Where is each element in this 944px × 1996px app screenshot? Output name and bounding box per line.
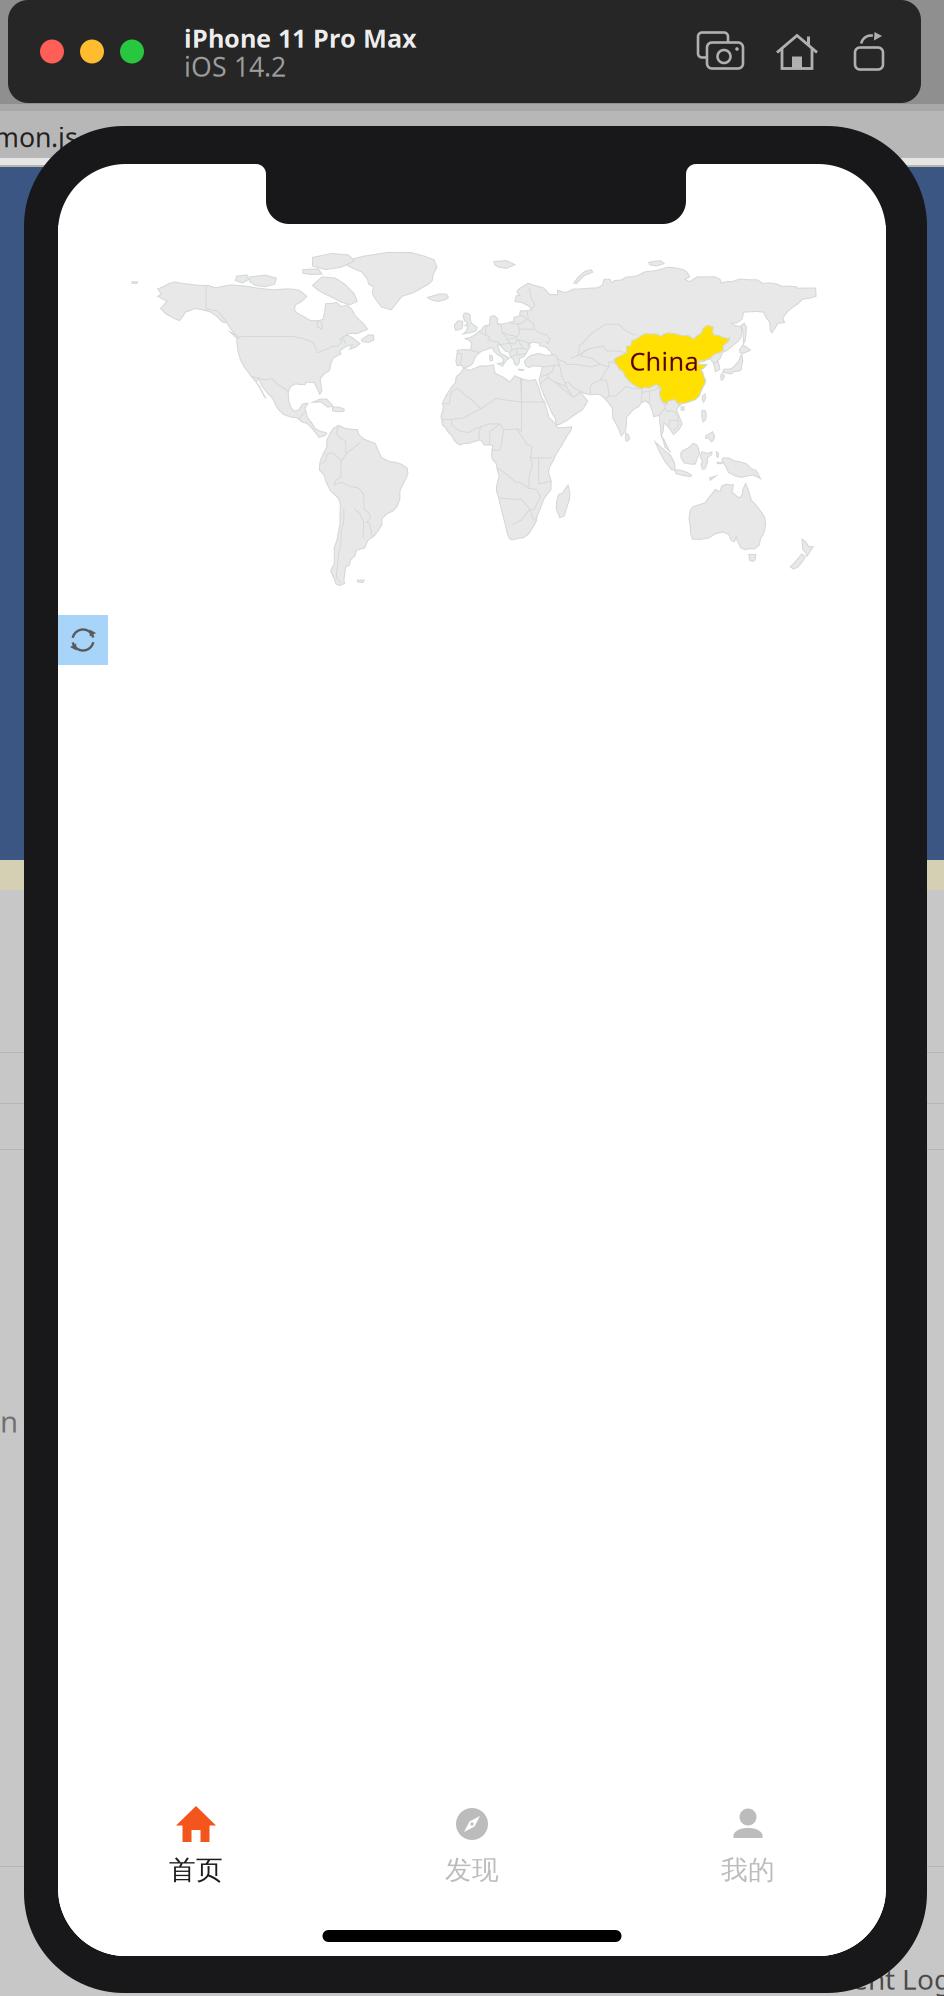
button[interactable]: Refresh [58, 615, 108, 665]
button[interactable]: 发现 [334, 1804, 610, 1883]
staticText: iOS 14.2 [184, 49, 286, 84]
staticText: 我的 [721, 1854, 775, 1886]
button[interactable]: Home [776, 31, 818, 71]
button[interactable]: 我的 [610, 1804, 886, 1883]
button[interactable]: Screenshot [698, 31, 746, 71]
staticText: Event Log [822, 1960, 944, 1996]
staticText: 首页 [169, 1854, 223, 1886]
button[interactable]: 首页 [58, 1804, 334, 1883]
staticText: 发现 [445, 1854, 499, 1886]
button[interactable]: Rotate [852, 31, 892, 71]
staticText: iPhone 11 Pro Max [184, 21, 417, 55]
staticText: mon.js [0, 119, 78, 155]
staticText: China [629, 344, 698, 378]
staticText: n [0, 1401, 18, 1440]
